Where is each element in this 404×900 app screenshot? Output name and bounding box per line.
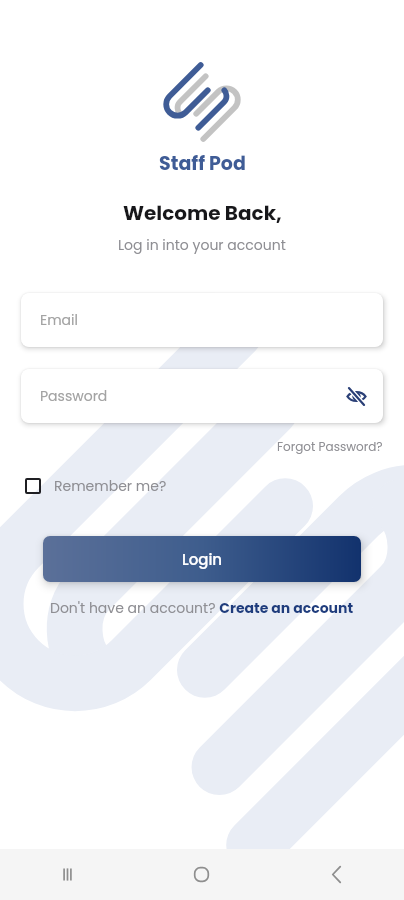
- button[interactable]: Password: [21, 369, 383, 423]
- button[interactable]: Remember me?: [25, 476, 167, 496]
- staticText: Don't have an account? Create an account: [50, 598, 354, 618]
- staticText: Login: [182, 549, 223, 570]
- button[interactable]: Email: [21, 293, 383, 347]
- staticText: Forgot Password?: [277, 438, 383, 455]
- button[interactable]: Don't have an account? Create an account: [50, 598, 354, 618]
- button[interactable]: Show password: [341, 381, 371, 411]
- staticText: Log in into your account: [118, 235, 286, 255]
- button[interactable]: Login: [43, 536, 361, 582]
- staticText: Email: [40, 310, 78, 330]
- staticText: Welcome Back,: [123, 199, 282, 227]
- staticText: Staff Pod: [159, 150, 246, 177]
- button[interactable]: Back: [269, 849, 404, 900]
- button[interactable]: Home: [134, 849, 269, 900]
- staticText: Password: [40, 386, 108, 406]
- button[interactable]: Recents: [0, 849, 134, 900]
- staticText: Remember me?: [54, 476, 167, 496]
- button[interactable]: Forgot Password?: [277, 438, 383, 455]
